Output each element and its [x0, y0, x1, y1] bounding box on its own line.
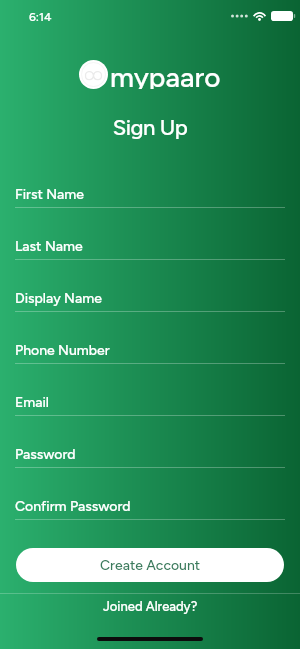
- staticText: Confirm Password: [15, 498, 131, 515]
- button[interactable]: Password: [0, 446, 300, 476]
- staticText: Email: [15, 394, 50, 411]
- staticText: mypaaro: [110, 60, 221, 89]
- staticText: Password: [15, 446, 76, 463]
- button[interactable]: Last Name: [0, 238, 300, 268]
- button[interactable]: First Name: [0, 186, 300, 216]
- button[interactable]: Phone Number: [0, 342, 300, 372]
- other: Cellular signal: [231, 10, 248, 22]
- button[interactable]: Create Account: [16, 548, 284, 582]
- staticText: Sign Up: [0, 114, 300, 140]
- button[interactable]: Confirm Password: [0, 498, 300, 528]
- staticText: 6:14: [29, 10, 52, 24]
- button[interactable]: Joined Already?: [0, 593, 300, 621]
- staticText: Display Name: [15, 290, 102, 307]
- staticText: Phone Number: [15, 342, 110, 359]
- staticText: Last Name: [15, 238, 83, 255]
- staticText: Create Account: [100, 557, 201, 574]
- other: Wi-Fi: [252, 10, 267, 22]
- other: Battery: [271, 10, 296, 22]
- button[interactable]: Email: [0, 394, 300, 424]
- button[interactable]: Display Name: [0, 290, 300, 320]
- staticText: Joined Already?: [103, 599, 198, 615]
- staticText: First Name: [15, 186, 84, 203]
